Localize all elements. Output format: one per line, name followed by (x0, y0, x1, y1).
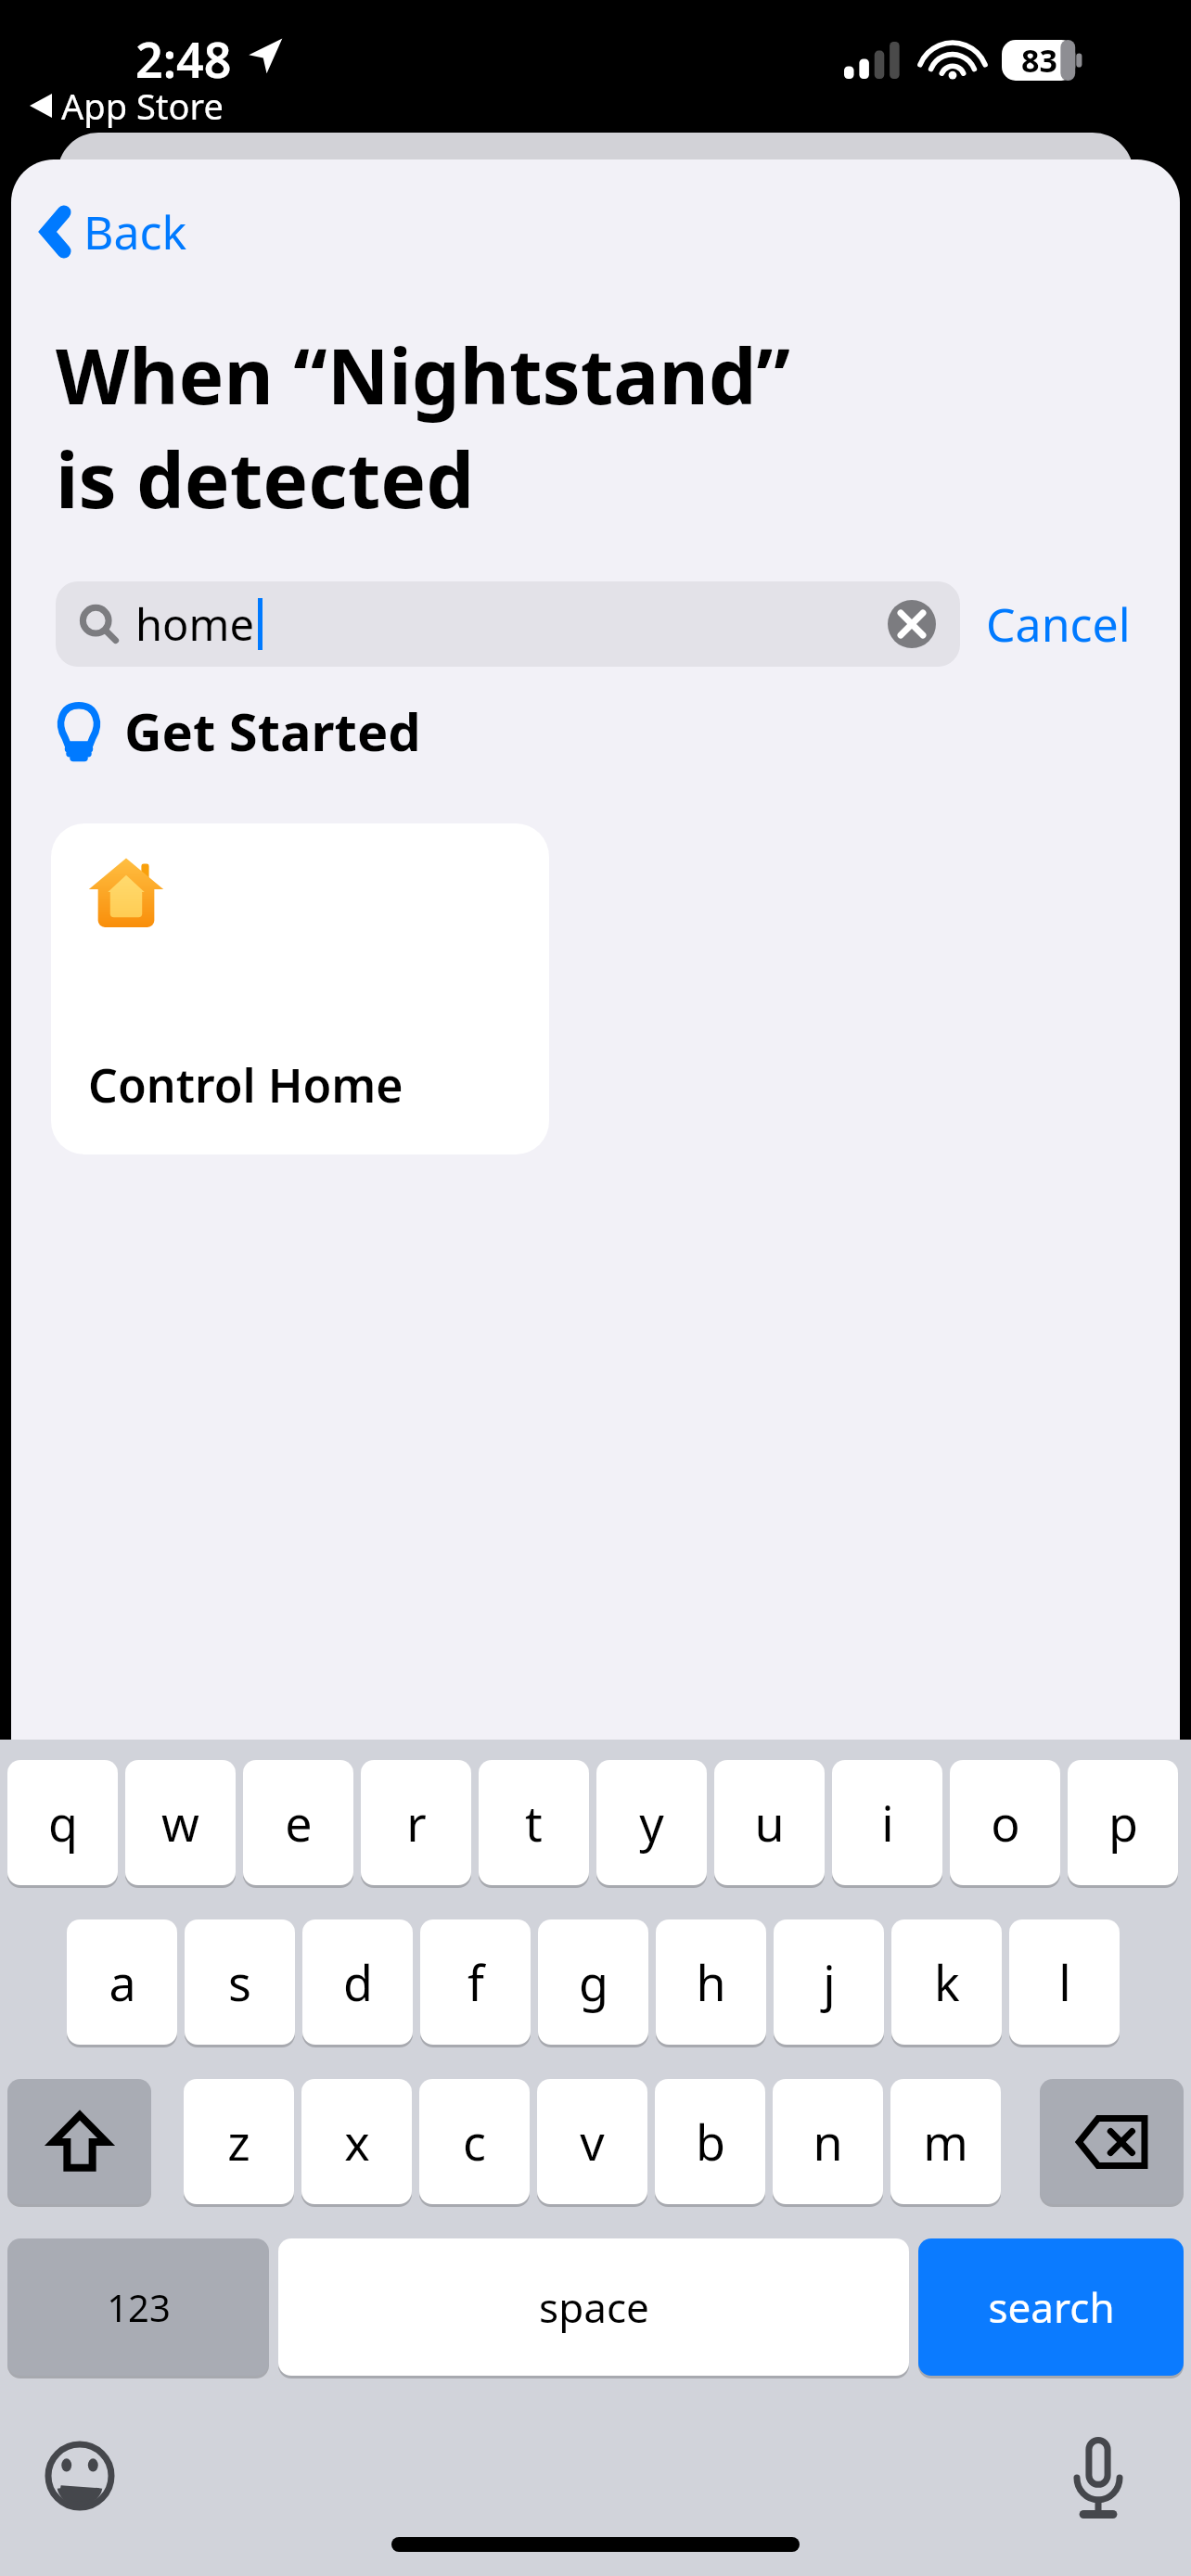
staticText: l (1058, 1949, 1071, 2015)
button[interactable]: u (714, 1760, 825, 1885)
staticText: is detected (56, 427, 475, 530)
button[interactable]: a (67, 1919, 177, 2045)
staticText: x (344, 2109, 370, 2174)
staticText: z (227, 2109, 250, 2174)
staticText: n (813, 2109, 843, 2174)
button[interactable]: f (420, 1919, 531, 2045)
button[interactable]: App Store (30, 82, 224, 130)
staticText: f (467, 1949, 484, 2015)
button[interactable]: 123 (7, 2238, 269, 2376)
staticText: m (923, 2109, 968, 2174)
button[interactable]: d (302, 1919, 413, 2045)
button[interactable]: e (243, 1760, 353, 1885)
button[interactable]: y (596, 1760, 707, 1885)
button[interactable]: k (891, 1919, 1002, 2045)
staticText: h (696, 1949, 726, 2015)
staticText: search (988, 2279, 1115, 2335)
staticText: u (754, 1790, 785, 1855)
button[interactable]: z (184, 2079, 294, 2204)
button[interactable]: s (185, 1919, 295, 2045)
button[interactable]: Shift (7, 2079, 151, 2204)
staticText: i (881, 1790, 894, 1855)
button[interactable]: r (361, 1760, 471, 1885)
button[interactable]: Cancel (980, 581, 1136, 667)
staticText: k (934, 1949, 960, 2015)
staticText: b (696, 2109, 725, 2174)
button[interactable]: Get Started (56, 694, 421, 768)
staticText: g (579, 1949, 608, 2015)
button[interactable]: x (301, 2079, 412, 2204)
button[interactable]: i (832, 1760, 942, 1885)
button[interactable]: l (1009, 1919, 1120, 2045)
staticText: v (580, 2109, 605, 2174)
staticText: c (463, 2109, 486, 2174)
button[interactable]: o (950, 1760, 1060, 1885)
staticText: y (639, 1790, 664, 1855)
staticText: 2:48 (135, 26, 232, 85)
staticText: t (525, 1790, 543, 1855)
button[interactable]: q (7, 1760, 118, 1885)
staticText: Back (83, 200, 187, 263)
staticText: j (823, 1949, 836, 2015)
staticText: space (539, 2279, 649, 2335)
staticText: 123 (107, 2282, 171, 2332)
button[interactable]: Back (41, 200, 187, 263)
button[interactable]: Control Home (51, 823, 549, 1154)
button[interactable]: home (56, 581, 960, 667)
staticText: Cancel (986, 593, 1131, 656)
staticText: q (48, 1790, 78, 1855)
staticText: Get Started (124, 695, 421, 766)
staticText: o (991, 1790, 1020, 1855)
staticText: When “Nightstand” (56, 323, 791, 427)
staticText: p (1108, 1790, 1138, 1855)
staticText: d (343, 1949, 373, 2015)
staticText: w (161, 1790, 199, 1855)
button[interactable]: search (918, 2238, 1184, 2376)
staticText: App Store (61, 82, 224, 130)
staticText: r (406, 1790, 427, 1855)
button[interactable]: Dictation (1065, 2435, 1132, 2520)
button[interactable]: v (537, 2079, 647, 2204)
button[interactable]: space (278, 2238, 909, 2376)
button[interactable]: c (419, 2079, 530, 2204)
button[interactable]: b (655, 2079, 765, 2204)
button[interactable]: t (479, 1760, 589, 1885)
button[interactable]: p (1068, 1760, 1178, 1885)
button[interactable]: j (774, 1919, 884, 2045)
staticText: 83 (1021, 39, 1057, 82)
staticText: Control Home (88, 1053, 403, 1116)
button[interactable]: Clear text (888, 600, 936, 648)
staticText: e (285, 1790, 313, 1855)
staticText: a (109, 1949, 136, 2015)
button[interactable]: n (773, 2079, 883, 2204)
button[interactable]: w (125, 1760, 236, 1885)
button[interactable]: Backspace (1040, 2079, 1184, 2204)
button[interactable]: Emoji keyboard (45, 2441, 115, 2511)
button[interactable]: g (538, 1919, 648, 2045)
staticText: home (135, 594, 254, 654)
staticText: s (228, 1949, 251, 2015)
button[interactable]: m (890, 2079, 1001, 2204)
button[interactable]: h (656, 1919, 766, 2045)
